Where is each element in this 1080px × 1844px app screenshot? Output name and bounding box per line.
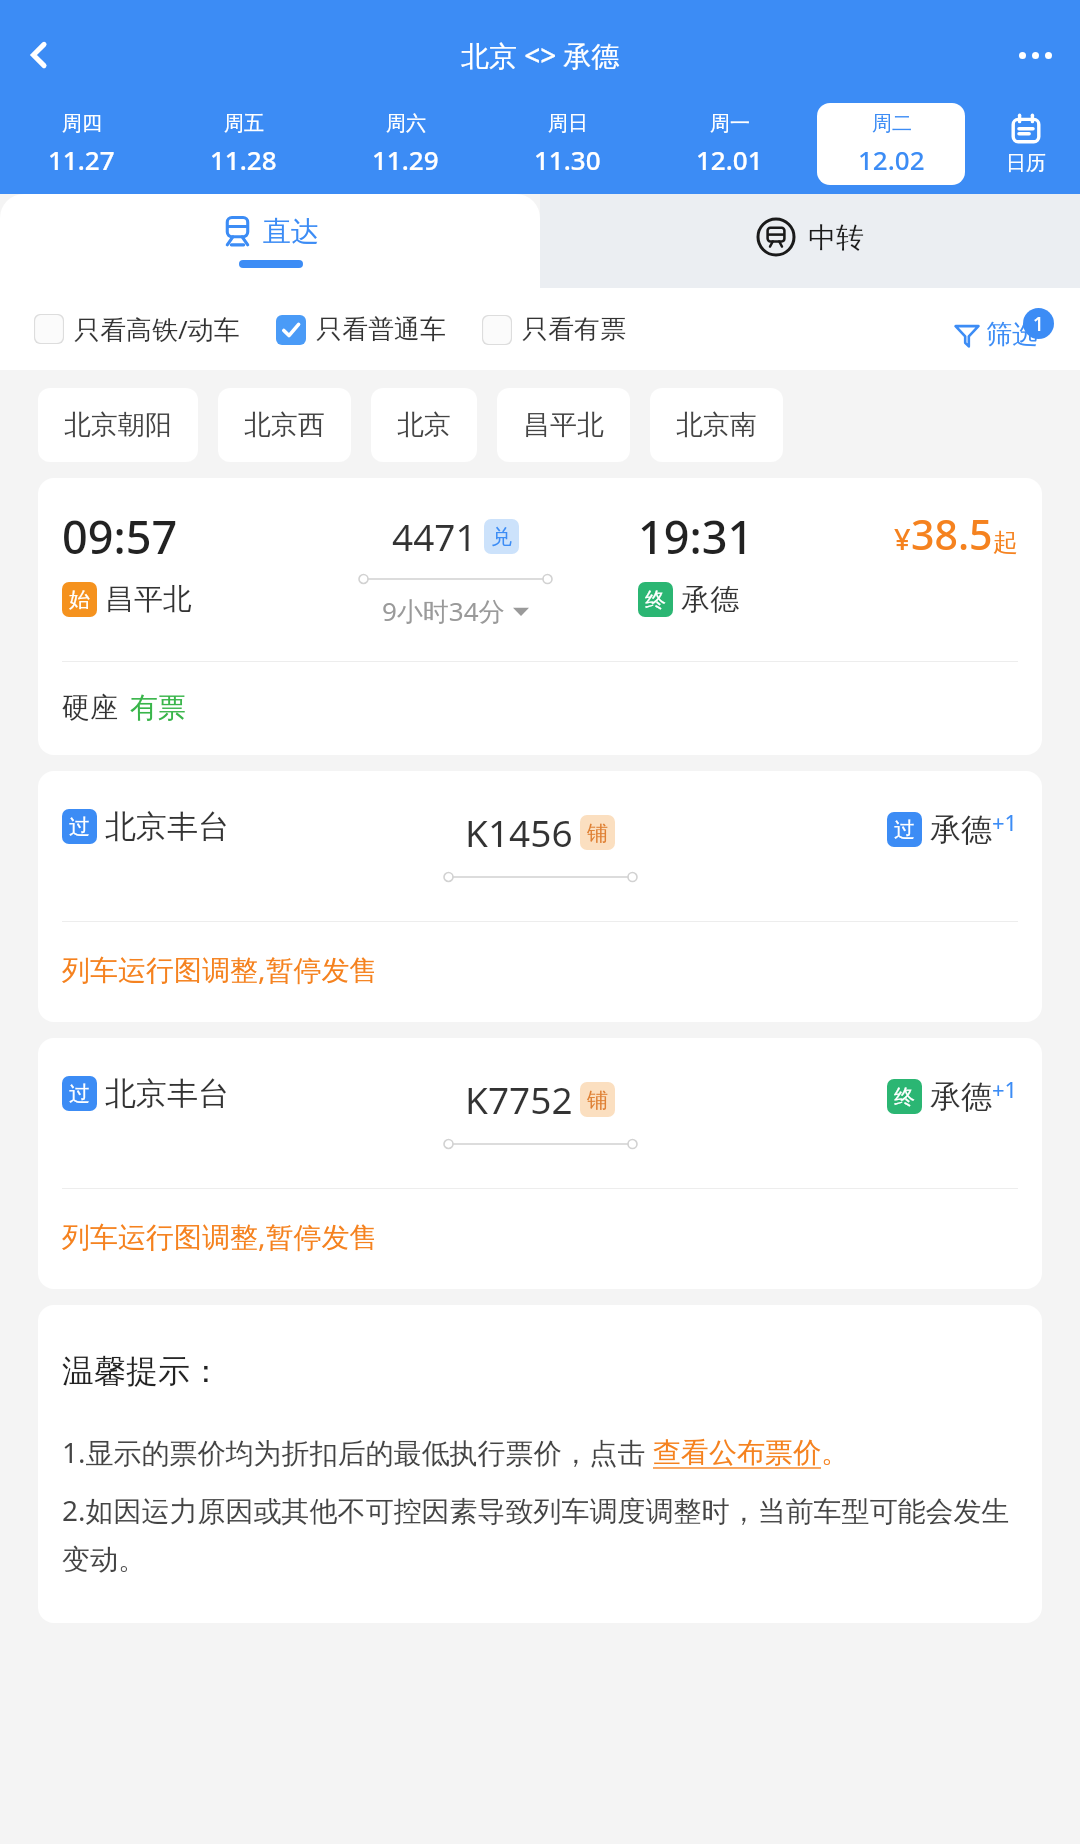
staticText: 周一 [710, 111, 750, 136]
button[interactable]: 只看有票 [482, 313, 626, 346]
staticText: 列车运行图调整,暂停发售 [62, 1217, 378, 1255]
staticText: 铺 [587, 1087, 608, 1113]
staticText: 38.5 [911, 506, 993, 562]
staticText: 终 [645, 587, 666, 613]
staticText: 日历 [1006, 151, 1046, 176]
button[interactable]: More options [1006, 26, 1064, 84]
staticText: 1.显示的票价均为折扣后的最低执行票价，点击 [62, 1433, 653, 1471]
staticText: 只看普通车 [316, 313, 446, 346]
staticText: K1456 [465, 807, 573, 857]
button[interactable]: 北京 [371, 388, 477, 462]
button[interactable]: 过 [38, 1038, 1042, 1289]
staticText: 只看高铁/动车 [74, 311, 240, 347]
button[interactable]: 查看公布票价 [653, 1435, 821, 1470]
staticText: 11.29 [372, 142, 439, 177]
button[interactable]: 周一 [655, 103, 803, 185]
staticText: 11.28 [210, 142, 277, 177]
staticText: 承德 [681, 581, 739, 618]
staticText: 2.如因运力原因或其他不可控因素导致列车调度调整时，当前车型可能会发生变动。 [62, 1491, 1018, 1577]
button[interactable]: 周五 [169, 103, 317, 185]
staticText: 承德 [930, 1077, 992, 1116]
staticText: 09:57 [62, 506, 178, 567]
staticText: 温馨提示： [62, 1351, 222, 1391]
staticText: ¥ [894, 519, 911, 558]
button[interactable]: 周日 [493, 103, 641, 185]
staticText: 昌平北 [523, 408, 604, 442]
button[interactable]: Back [10, 26, 68, 84]
staticText: 9小时34分 [382, 593, 505, 629]
staticText: +1 [992, 1074, 1018, 1104]
staticText: 4471 [392, 511, 477, 561]
staticText: 周日 [548, 111, 588, 136]
staticText: 列车运行图调整,暂停发售 [62, 950, 378, 988]
staticText: 北京 <> 承德 [461, 36, 620, 74]
staticText: 11.27 [48, 142, 115, 177]
button[interactable]: 只看高铁/动车 [34, 311, 240, 347]
staticText: 北京 [397, 408, 451, 442]
button[interactable]: 周四 [7, 103, 155, 185]
staticText: 。 [821, 1435, 849, 1470]
staticText: 过 [69, 1081, 90, 1107]
button[interactable]: 周六 [331, 103, 479, 185]
staticText: K7752 [465, 1074, 573, 1124]
staticText: 北京丰台 [105, 807, 229, 846]
staticText: 只看有票 [522, 313, 626, 346]
staticText: 12.01 [696, 142, 763, 177]
staticText: 过 [69, 814, 90, 840]
button[interactable]: 过 [38, 771, 1042, 1022]
staticText: +1 [992, 807, 1018, 837]
staticText: 12.02 [858, 142, 925, 177]
button[interactable]: 只看普通车 [276, 313, 446, 346]
staticText: 11.30 [534, 142, 601, 177]
staticText: 中转 [808, 220, 864, 255]
staticText: 北京南 [676, 408, 757, 442]
staticText: 周二 [872, 111, 912, 136]
staticText: 北京朝阳 [64, 408, 172, 442]
staticText: 铺 [587, 820, 608, 846]
staticText: 硬座 [62, 690, 118, 725]
staticText: 周四 [62, 111, 102, 136]
button[interactable]: 北京西 [218, 388, 351, 462]
staticText: 过 [894, 817, 915, 843]
button[interactable]: 北京朝阳 [38, 388, 198, 462]
button[interactable]: 中转 [540, 194, 1080, 288]
staticText: 周五 [224, 111, 264, 136]
staticText: 承德 [930, 810, 992, 849]
staticText: 起 [993, 527, 1018, 558]
staticText: 昌平北 [105, 581, 192, 618]
button[interactable]: 北京南 [650, 388, 783, 462]
staticText: 周六 [386, 111, 426, 136]
button[interactable]: 周二 [817, 103, 965, 185]
button[interactable]: 直达 [0, 194, 540, 288]
staticText: 北京西 [244, 408, 325, 442]
staticText: 直达 [263, 214, 319, 249]
button[interactable]: 09:57 [38, 478, 1042, 755]
staticText: 有票 [130, 690, 186, 725]
staticText: 筛选 [986, 318, 1038, 351]
button[interactable]: 日历 [972, 94, 1080, 194]
staticText: 北京丰台 [105, 1074, 229, 1113]
staticText: 19:31 [638, 506, 754, 567]
staticText: 终 [894, 1084, 915, 1110]
button[interactable]: 筛选 [954, 308, 1054, 351]
staticText: 1 [1033, 311, 1044, 337]
button[interactable]: 昌平北 [497, 388, 630, 462]
staticText: 兑 [491, 524, 512, 550]
staticText: 始 [69, 587, 90, 613]
